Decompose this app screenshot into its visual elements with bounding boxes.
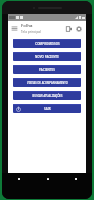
- staticText: Folha: [21, 23, 33, 29]
- button[interactable]: PACIENTES: [13, 65, 81, 74]
- staticText: BUSCAR ATUALIZAÇÕES: [32, 94, 63, 97]
- staticText: VISITAS DE ACOMPANHAMENTO: [27, 81, 68, 84]
- button[interactable]: Configurações: [74, 24, 84, 34]
- button[interactable]: SAIR: [13, 104, 81, 113]
- button[interactable]: NOVO PACIENTE: [13, 52, 81, 61]
- button[interactable]: Início: [43, 174, 52, 183]
- staticText: SAIR: [44, 107, 51, 111]
- staticText: Tela principal: [21, 30, 42, 34]
- button[interactable]: Voltar: [14, 174, 23, 183]
- staticText: NOVO PACIENTE: [35, 55, 59, 59]
- staticText: PACIENTES: [39, 68, 55, 72]
- button[interactable]: Folha: [21, 23, 64, 34]
- button[interactable]: COMPROMISSOS: [13, 39, 81, 48]
- button[interactable]: Relatório: [64, 24, 74, 34]
- button[interactable]: Recentes: [71, 174, 80, 183]
- button[interactable]: BUSCAR ATUALIZAÇÕES: [13, 91, 81, 100]
- button[interactable]: VISITAS DE ACOMPANHAMENTO: [13, 78, 81, 87]
- staticText: COMPROMISSOS: [35, 42, 60, 46]
- button[interactable]: Menu: [10, 24, 19, 33]
